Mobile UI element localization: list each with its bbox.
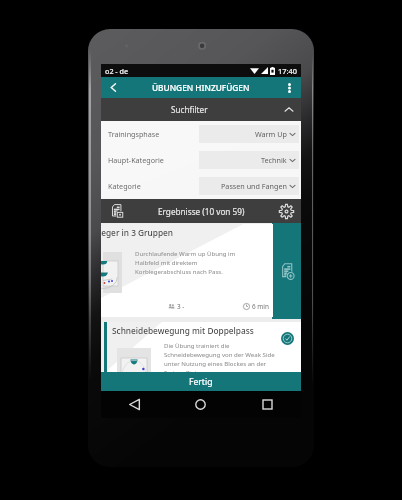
button[interactable]: Trainingsphase — [101, 121, 301, 147]
staticText: Kategorie — [108, 181, 141, 191]
button[interactable]: Add exercise — [272, 223, 301, 319]
button[interactable]: Settings — [271, 199, 301, 223]
staticText: 6 min — [252, 302, 269, 311]
button[interactable]: Home — [167, 391, 234, 418]
staticText: Haupt-Kategorie — [108, 155, 164, 165]
button[interactable]: Exercise list — [101, 199, 131, 223]
staticText: Ergebnisse (10 von 59) — [158, 206, 245, 217]
button[interactable]: Recent apps — [234, 391, 301, 418]
button[interactable]: Back — [101, 391, 167, 418]
staticText: Technik — [261, 155, 287, 165]
staticText: unter Nutzung eines Blockes an der — [164, 359, 267, 367]
staticText: Schneidebewegung mit Doppelpass — [112, 325, 254, 336]
staticText: o2 - de — [105, 66, 129, 76]
staticText: Korblegerabschluss nach Pass. — [135, 267, 223, 275]
button[interactable]: Kategorie — [101, 173, 301, 199]
button[interactable]: Haupt-Kategorie — [101, 147, 301, 173]
button[interactable]: Schneidebewegung mit Doppelpass — [102, 322, 301, 381]
staticText: Halbfeld mit direktem — [135, 258, 198, 266]
button[interactable]: More options — [277, 77, 301, 98]
staticText: Die Übung trainiert die — [164, 341, 230, 349]
staticText: Freiwurflinie. — [164, 368, 202, 376]
staticText: Fertig — [189, 376, 213, 388]
staticText: Warm Up — [255, 129, 287, 139]
staticText: Trainingsphase — [108, 129, 160, 139]
button[interactable]: Selected — [281, 332, 294, 345]
staticText: ÜBUNGEN HINZUFÜGEN — [152, 82, 250, 93]
button[interactable]: Korbleger in 3 Gruppen — [101, 224, 273, 317]
staticText: 17:40 — [278, 66, 297, 76]
button[interactable]: Fertig — [101, 372, 301, 391]
staticText: Durchlaufende Warm up Übung im — [135, 249, 236, 257]
button[interactable]: Suchfilter — [101, 98, 301, 121]
staticText: 3 - — [177, 302, 185, 311]
button[interactable]: Back — [101, 77, 125, 98]
staticText: Suchfilter — [171, 104, 208, 115]
staticText: Passen und Fangen — [221, 181, 287, 191]
staticText: Schneidebewegung von der Weak Side — [164, 350, 275, 358]
staticText: Korbleger in 3 Gruppen — [101, 227, 174, 238]
